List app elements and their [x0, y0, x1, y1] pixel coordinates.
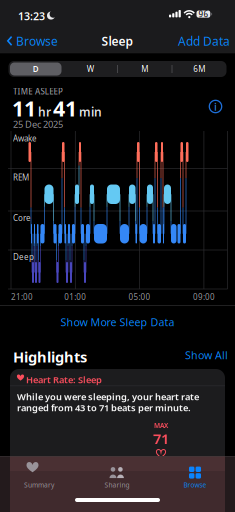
staticText: Sharing [104, 481, 129, 489]
staticText: TIME ASLEEP [13, 86, 63, 97]
staticText: REM [13, 172, 29, 183]
staticText: Highlights [13, 347, 87, 366]
staticText: Deep [13, 251, 34, 262]
staticText: Core [13, 212, 31, 223]
staticText: 13:23 [18, 9, 45, 23]
staticText: 09:00 [193, 291, 215, 302]
staticText: 6M [193, 64, 205, 74]
staticText: 71 [153, 429, 169, 448]
button[interactable]: Add Data [174, 31, 235, 51]
staticText: Heart Rate: Sleep [26, 373, 102, 386]
staticText: Awake [13, 133, 37, 144]
button[interactable]: W [63, 61, 117, 77]
button[interactable]: Summary [0, 461, 78, 495]
button[interactable]: M [117, 61, 172, 77]
staticText: W [87, 64, 94, 74]
staticText: 05:00 [129, 291, 151, 302]
staticText: Show All [185, 348, 228, 362]
staticText: 01:00 [64, 291, 86, 302]
button[interactable]: Show All [181, 344, 232, 366]
staticText: 96 [198, 9, 208, 19]
staticText: While you were sleeping, your heart rate [17, 390, 199, 403]
button[interactable]: Show More Sleep Data [0, 314, 235, 330]
staticText: Browse [16, 33, 58, 49]
staticText: MAX [154, 421, 168, 430]
staticText: Sleep [101, 33, 133, 49]
staticText: ranged from 43 to 71 beats per minute. [17, 401, 191, 414]
staticText: D [33, 64, 39, 74]
button[interactable]: About Time Asleep [208, 99, 222, 113]
staticText: M [141, 64, 148, 74]
staticText: 11 [12, 94, 36, 122]
staticText: 41 [53, 94, 77, 122]
staticText: Add Data [178, 33, 230, 49]
button[interactable]: D [10, 62, 61, 75]
button[interactable]: Heart Rate: Sleep [10, 369, 225, 512]
staticText: Show More Sleep Data [60, 315, 174, 329]
staticText: i [214, 99, 217, 114]
button[interactable]: Sharing [78, 461, 156, 495]
staticText: Summary [24, 481, 54, 489]
staticText: Browse [183, 481, 206, 489]
staticText: min [79, 104, 102, 120]
button[interactable]: Browse [0, 31, 62, 51]
button[interactable]: Browse [156, 461, 234, 495]
staticText: hr [38, 104, 51, 120]
staticText: 21:00 [11, 291, 33, 302]
staticText: 25 Dec 2025 [13, 118, 63, 130]
button[interactable]: 6M [172, 61, 226, 77]
